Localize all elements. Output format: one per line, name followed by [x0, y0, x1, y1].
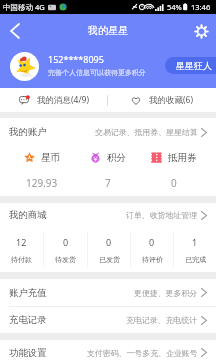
staticText: 0	[63, 236, 69, 248]
staticText: 54%	[167, 2, 182, 12]
button[interactable]: 星币	[9, 146, 75, 196]
staticText: 0	[171, 176, 177, 190]
staticText: 交易记录、抵用券、星星结算	[95, 127, 198, 137]
staticText: 我的星星	[88, 24, 128, 37]
button[interactable]: 抵用券	[141, 146, 207, 196]
staticText: 1	[192, 236, 198, 248]
staticText: 完善个人信息可以获得更多积分	[48, 68, 146, 77]
button[interactable]: 1	[174, 227, 216, 272]
button[interactable]: 我的商城	[0, 203, 216, 227]
button[interactable]: 账户充值	[0, 279, 216, 306]
button[interactable]: 积分	[75, 146, 141, 196]
staticText: 129.93	[26, 176, 58, 190]
staticText: 152****8095	[48, 53, 104, 65]
staticText: 更便捷、更多积分	[134, 288, 198, 298]
staticText: 我的消息(4/9)	[37, 94, 89, 106]
staticText: 已完成	[185, 255, 206, 264]
staticText: 充电记录、充电统计	[126, 315, 198, 325]
button[interactable]: 0	[44, 227, 87, 272]
staticText: 中国移动 4G	[3, 2, 45, 12]
staticText: 待发货	[55, 255, 76, 264]
button[interactable]: 我的账户	[0, 118, 216, 146]
button[interactable]: Back	[0, 16, 30, 46]
staticText: 7	[105, 176, 111, 190]
staticText: 抵用券	[168, 152, 197, 163]
staticText: 我的收藏(6)	[149, 94, 193, 106]
staticText: 星星狂人	[176, 60, 212, 71]
staticText: 我的商城	[9, 209, 47, 221]
button[interactable]: 0	[131, 227, 173, 272]
staticText: 13:46	[191, 2, 211, 12]
staticText: 12	[16, 236, 27, 248]
staticText: 星币	[41, 152, 61, 163]
staticText: 充电记录	[9, 314, 47, 326]
staticText: 账户充值	[9, 287, 47, 299]
staticText: 支付密码、一号多充、企业账号	[87, 348, 198, 358]
button[interactable]: 星星狂人	[165, 57, 216, 74]
staticText: 0	[106, 236, 112, 248]
staticText: 功能设置	[9, 347, 47, 359]
staticText: 待评价	[142, 255, 163, 264]
staticText: 已发货	[99, 255, 120, 264]
button[interactable]: 0	[88, 227, 130, 272]
staticText: 积分	[107, 152, 127, 163]
button[interactable]: 功能设置	[0, 347, 216, 360]
button[interactable]: 充电记录	[0, 307, 216, 333]
button[interactable]: 我的收藏(6)	[108, 88, 216, 112]
button[interactable]: 我的消息(4/9)	[0, 88, 107, 112]
staticText: 我的账户	[9, 126, 47, 138]
button[interactable]: 12	[0, 227, 43, 272]
staticText: 待付款	[11, 255, 32, 264]
staticText: 0	[149, 236, 155, 248]
button[interactable]: Settings	[186, 16, 216, 46]
staticText: 订单、收货地址管理	[126, 210, 198, 220]
